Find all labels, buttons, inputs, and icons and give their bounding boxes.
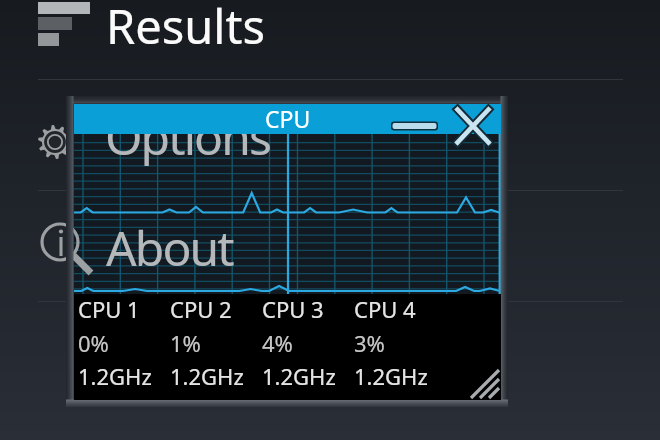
staticText: 4% xyxy=(262,328,293,358)
staticText: 1.2GHz xyxy=(262,361,336,391)
staticText: CPU 3 xyxy=(262,294,324,324)
staticText: 1% xyxy=(170,328,201,358)
staticText: 1.2GHz xyxy=(354,361,428,391)
staticText: CPU 2 xyxy=(170,294,232,324)
staticText: Options xyxy=(105,104,271,169)
button[interactable]: About xyxy=(0,191,623,301)
button[interactable]: Close xyxy=(450,103,496,149)
staticText: CPU 1 xyxy=(78,294,140,324)
button[interactable]: Options xyxy=(0,80,623,190)
button[interactable]: Results xyxy=(0,0,660,79)
staticText: CPU xyxy=(265,103,311,133)
staticText: About xyxy=(106,215,233,280)
staticText: CPU 4 xyxy=(354,294,416,324)
staticText: 1.2GHz xyxy=(78,361,152,391)
staticText: Results xyxy=(106,0,265,58)
staticText: 1.2GHz xyxy=(170,361,244,391)
button[interactable]: CPU xyxy=(74,104,501,134)
button[interactable]: Minimize xyxy=(388,119,441,133)
staticText: 3% xyxy=(354,328,385,358)
staticText: 0% xyxy=(78,328,109,358)
